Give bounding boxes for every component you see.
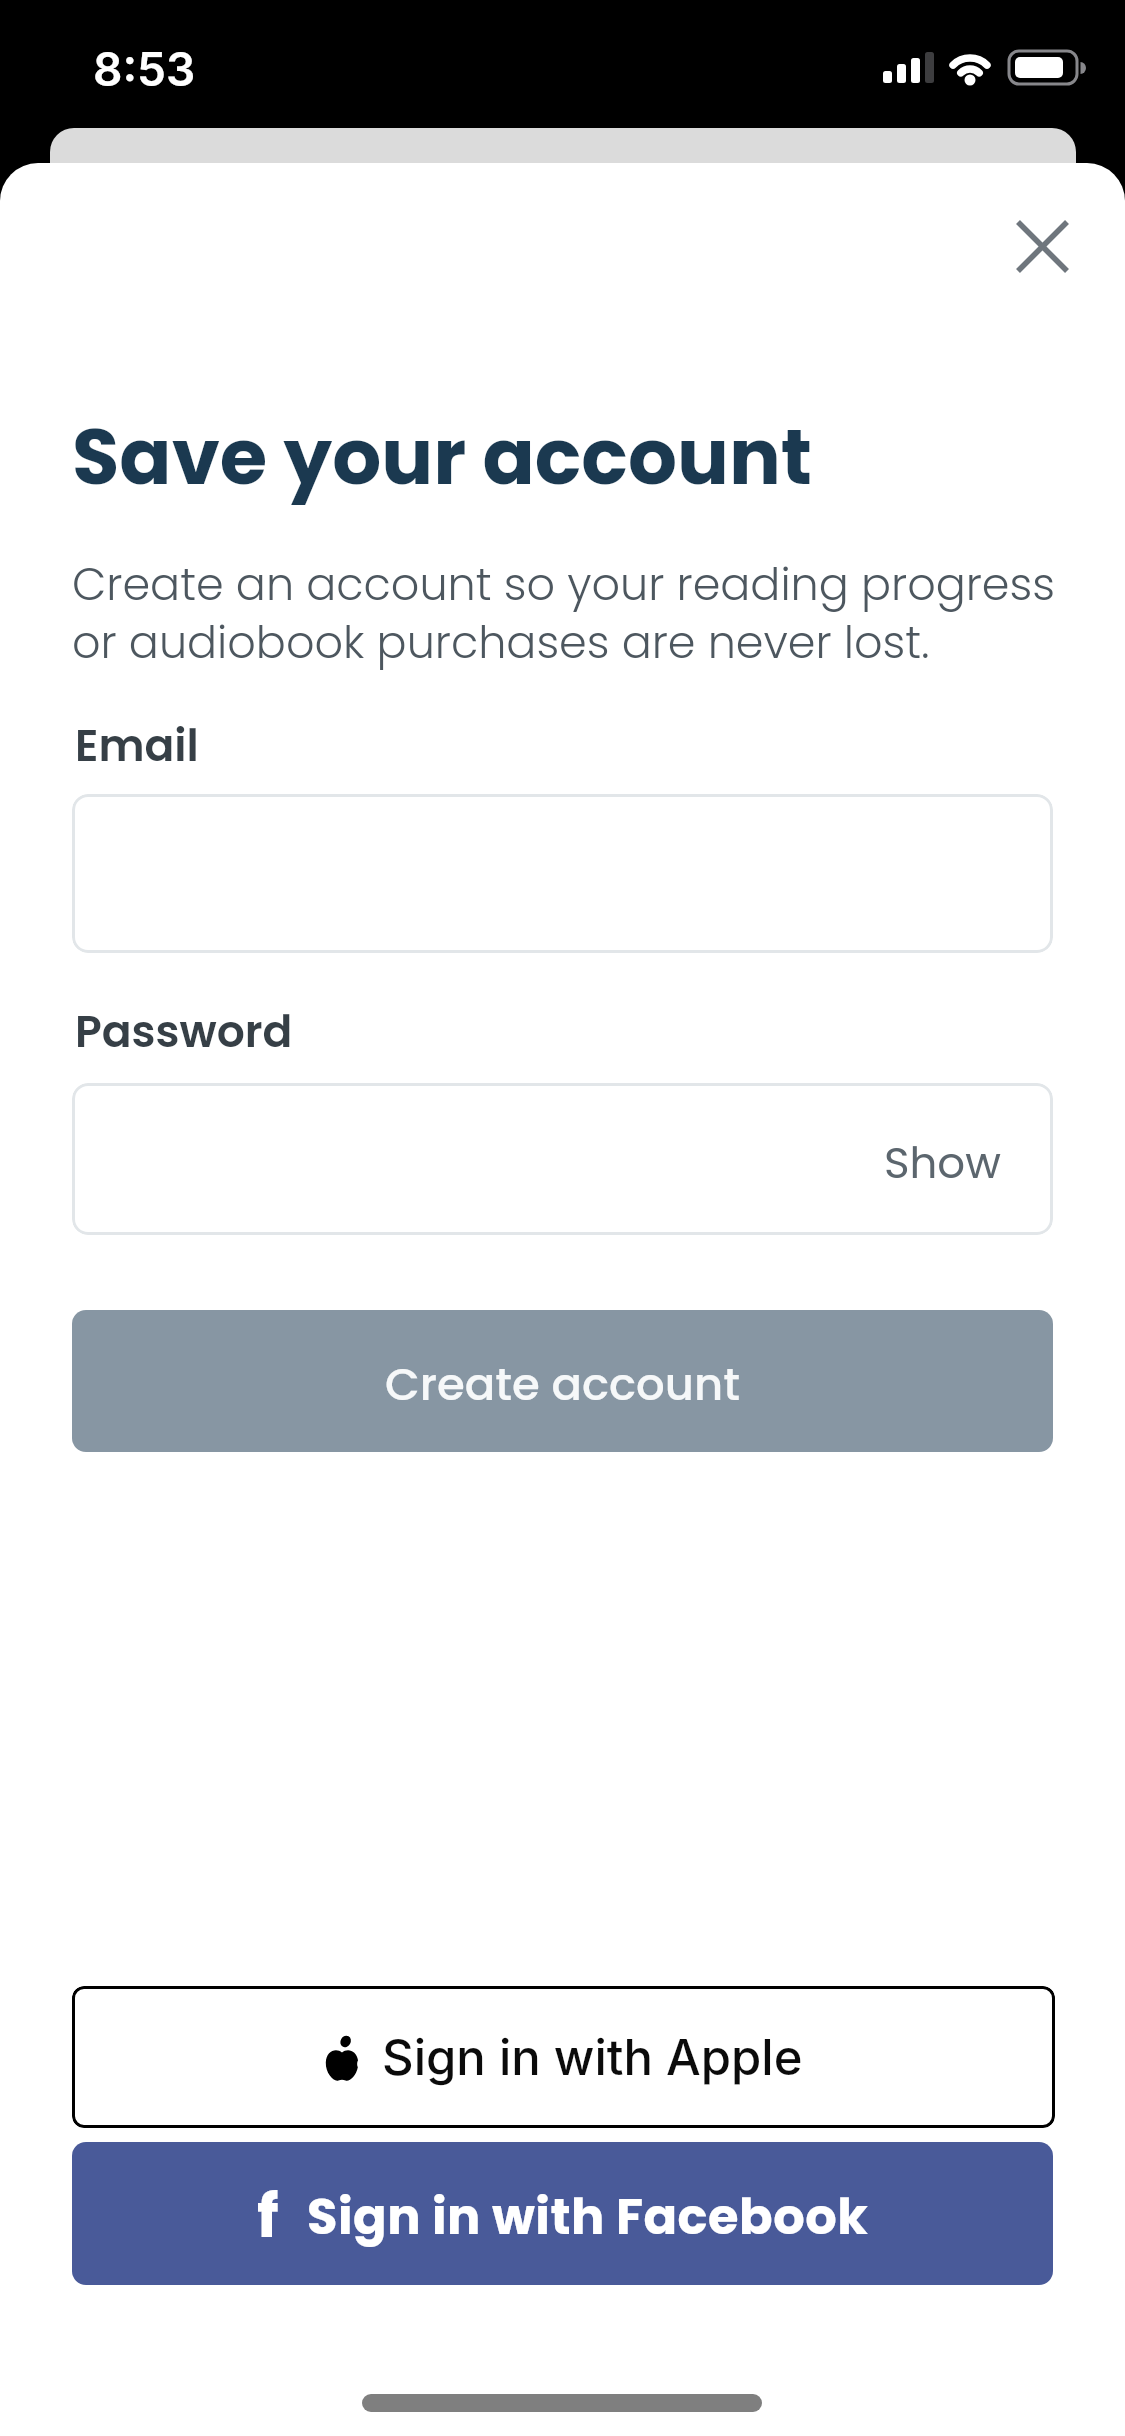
staticText: 8:53	[93, 41, 196, 97]
button[interactable]: Sign in with Apple	[72, 1986, 1055, 2128]
button[interactable]: Show	[72, 1083, 1053, 1235]
staticText: Sign in with Facebook	[307, 2182, 869, 2251]
staticText: Show	[884, 1132, 1001, 1193]
staticText: Email	[75, 715, 199, 777]
staticText: Sign in with Apple	[382, 2028, 803, 2087]
staticText: Save your account	[72, 403, 813, 511]
staticText: Create account	[385, 1353, 740, 1416]
button[interactable]	[1002, 206, 1082, 286]
staticText: f	[257, 2174, 279, 2258]
button[interactable]: Create account	[72, 1310, 1053, 1452]
button[interactable]	[72, 794, 1053, 953]
staticText: Password	[75, 1001, 293, 1063]
staticText: Create an account so your reading progre…	[72, 553, 1055, 674]
button[interactable]: f	[72, 2142, 1053, 2285]
